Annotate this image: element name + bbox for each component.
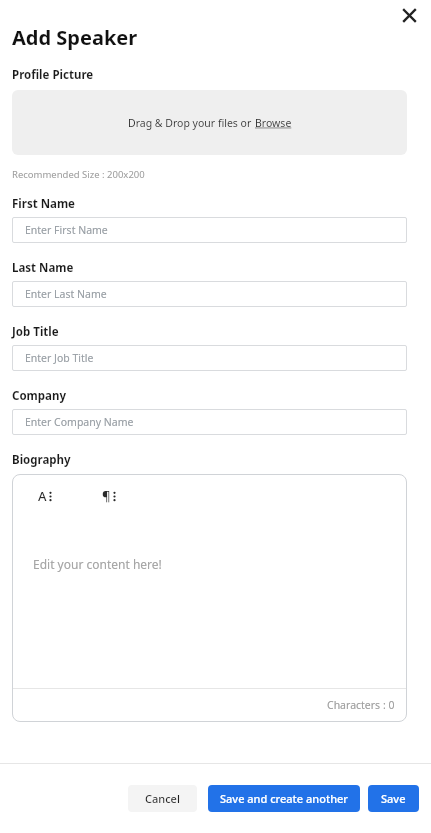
staticText: Drag & Drop your files or	[128, 116, 255, 130]
button[interactable]: Save	[368, 785, 419, 812]
staticText: Add Speaker	[12, 24, 138, 51]
staticText: Job Title	[12, 324, 59, 340]
button[interactable]: Edit your content here!	[12, 518, 407, 688]
staticText: Enter Company Name	[25, 415, 134, 429]
staticText: Save	[381, 791, 406, 806]
staticText: Enter Last Name	[25, 287, 107, 301]
staticText: Company	[12, 388, 66, 404]
staticText: Cancel	[145, 791, 180, 806]
staticText: Recommended Size : 200x200	[12, 168, 145, 181]
staticText: Browse	[255, 116, 292, 130]
staticText: Profile Picture	[12, 67, 94, 83]
staticText: A	[38, 487, 47, 505]
button[interactable]: Paragraph style	[98, 483, 120, 509]
button[interactable]: Enter First Name	[12, 217, 407, 243]
staticText: Last Name	[12, 260, 74, 276]
staticText: Characters : 0	[327, 698, 395, 712]
button[interactable]: Save and create another	[208, 785, 360, 812]
staticText: First Name	[12, 196, 75, 212]
staticText: Biography	[12, 452, 71, 468]
button[interactable]: Enter Last Name	[12, 281, 407, 307]
button[interactable]: Drag & Drop your files or	[12, 90, 407, 155]
button[interactable]: Enter Company Name	[12, 409, 407, 435]
staticText: Enter Job Title	[25, 351, 94, 365]
button[interactable]: Font style	[34, 483, 56, 509]
button[interactable]: Cancel	[128, 785, 197, 812]
button[interactable]: Enter Job Title	[12, 345, 407, 371]
staticText: Save and create another	[220, 791, 348, 806]
staticText: Edit your content here!	[33, 556, 162, 572]
staticText: Enter First Name	[25, 223, 108, 237]
button[interactable]: Close	[394, 0, 425, 31]
staticText: ¶	[102, 487, 111, 505]
